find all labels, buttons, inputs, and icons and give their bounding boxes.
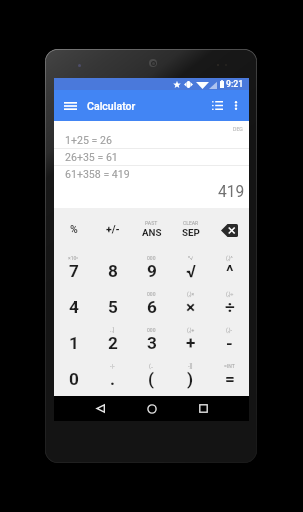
- staticText: 000: [147, 327, 156, 333]
- staticText: =INT: [224, 363, 235, 369]
- button[interactable]: More options: [225, 90, 247, 121]
- button[interactable]: 8: [93, 252, 132, 288]
- staticText: -]]: [188, 363, 193, 369]
- button[interactable]: 0: [54, 360, 93, 396]
- button[interactable]: Back: [87, 396, 113, 421]
- button[interactable]: (,)+: [171, 324, 210, 360]
- button[interactable]: (,)÷: [210, 288, 249, 324]
- staticText: 3: [147, 333, 157, 353]
- button[interactable]: 61+358 = 419: [54, 166, 249, 181]
- staticText: 8: [108, 261, 118, 281]
- button[interactable]: -|-: [93, 360, 132, 396]
- staticText: 1: [69, 333, 79, 353]
- staticText: ×: [186, 297, 196, 317]
- button[interactable]: 000: [132, 288, 171, 324]
- staticText: 5: [108, 297, 118, 317]
- button[interactable]: 000: [132, 252, 171, 288]
- button[interactable]: Recent apps: [190, 396, 216, 421]
- staticText: ÷: [225, 297, 235, 317]
- staticText: =: [225, 369, 235, 389]
- staticText: +: [186, 333, 196, 353]
- staticText: 6: [147, 297, 157, 317]
- button[interactable]: ..]: [93, 324, 132, 360]
- staticText: 7: [69, 261, 79, 281]
- button[interactable]: 5: [93, 288, 132, 324]
- staticText: 61+358 = 419: [65, 168, 130, 180]
- staticText: 9:21: [226, 79, 244, 89]
- button[interactable]: =INT: [210, 360, 249, 396]
- staticText: ^: [226, 261, 234, 281]
- button[interactable]: (,)^: [210, 252, 249, 288]
- button[interactable]: CLEAR: [171, 208, 210, 252]
- staticText: CLEAR: [183, 220, 199, 226]
- staticText: Calculator: [87, 100, 136, 112]
- staticText: ): [187, 369, 194, 389]
- staticText: -|-: [110, 363, 115, 369]
- staticText: (,)×: [187, 291, 195, 297]
- button[interactable]: 1+25 = 26: [54, 132, 249, 147]
- staticText: DEG: [233, 126, 243, 132]
- button[interactable]: 26+35 = 61: [54, 149, 249, 164]
- staticText: 419: [218, 183, 245, 201]
- staticText: ANS: [142, 227, 162, 238]
- staticText: (,)÷: [226, 291, 234, 297]
- button[interactable]: 1: [54, 324, 93, 360]
- staticText: -: [226, 333, 233, 353]
- staticText: (..: [149, 363, 154, 369]
- staticText: SEP: [182, 227, 200, 238]
- staticText: (,)+: [187, 327, 195, 333]
- staticText: 000: [147, 255, 156, 261]
- staticText: 2: [108, 333, 118, 353]
- button[interactable]: -]]: [171, 360, 210, 396]
- staticText: ×10ˣ: [68, 255, 79, 262]
- staticText: PAST: [145, 220, 158, 226]
- staticText: 1+25 = 26: [65, 134, 112, 146]
- button[interactable]: Navigation menu: [56, 90, 84, 121]
- other: Backspace: [221, 224, 238, 237]
- button[interactable]: 000: [132, 324, 171, 360]
- button[interactable]: (..: [132, 360, 171, 396]
- staticText: .: [110, 369, 115, 389]
- staticText: ..]: [110, 327, 115, 333]
- button[interactable]: ⁿ√: [171, 252, 210, 288]
- button[interactable]: %: [54, 208, 93, 252]
- button[interactable]: (,)×: [171, 288, 210, 324]
- staticText: 9: [147, 261, 157, 281]
- staticText: (,)-: [226, 327, 233, 333]
- staticText: √: [186, 261, 196, 281]
- staticText: ⁿ√: [188, 255, 193, 261]
- staticText: (,)^: [226, 255, 233, 261]
- staticText: 000: [147, 291, 156, 297]
- button[interactable]: History: [204, 90, 230, 121]
- staticText: 4: [69, 297, 79, 317]
- staticText: +/-: [106, 223, 120, 235]
- button[interactable]: Home: [139, 396, 165, 421]
- button[interactable]: PAST: [132, 208, 171, 252]
- staticText: %: [70, 223, 78, 235]
- button[interactable]: +/-: [93, 208, 132, 252]
- staticText: 0: [69, 369, 79, 389]
- button[interactable]: 4: [54, 288, 93, 324]
- button[interactable]: Backspace: [210, 208, 249, 252]
- staticText: (: [148, 369, 155, 389]
- button[interactable]: (,)-: [210, 324, 249, 360]
- staticText: 26+35 = 61: [65, 151, 118, 163]
- button[interactable]: ×10ˣ: [54, 252, 93, 288]
